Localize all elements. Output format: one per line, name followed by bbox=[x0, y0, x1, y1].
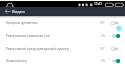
staticText: Видео bbox=[12, 9, 25, 15]
button[interactable]: Реверсивный предупреждающий зуммер bbox=[0, 42, 125, 55]
staticText: OFF bbox=[100, 47, 105, 51]
staticText: Кондиционер bbox=[6, 59, 101, 63]
staticText: ON bbox=[101, 34, 105, 38]
staticText: OFF bbox=[100, 21, 105, 25]
button[interactable]: Switch on bbox=[111, 32, 121, 40]
staticText: Реверсивный предупреждающий зуммер bbox=[6, 47, 100, 51]
staticText: Реверсивный помощник Link bbox=[6, 34, 101, 38]
button[interactable]: Switch on bbox=[111, 57, 121, 65]
button[interactable]: Контроль дуновения bbox=[0, 16, 125, 29]
button[interactable]: Switch off bbox=[111, 45, 121, 53]
staticText: ON bbox=[101, 59, 105, 63]
button[interactable]: Реверсивный помощник Link bbox=[0, 29, 125, 42]
button[interactable]: Switch off bbox=[111, 19, 121, 27]
staticText: Контроль дуновения bbox=[6, 21, 100, 25]
staticText: 10:41 bbox=[94, 2, 103, 6]
button[interactable]: Кондиционер bbox=[0, 55, 125, 67]
button[interactable]: Back bbox=[0, 7, 12, 16]
